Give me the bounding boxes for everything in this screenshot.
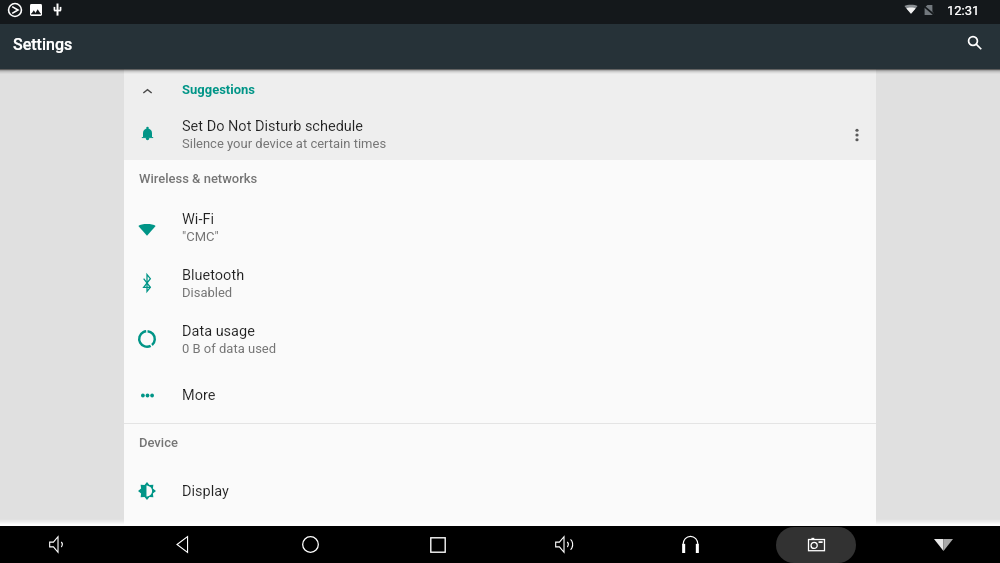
button[interactable]: Back (121, 526, 248, 563)
button[interactable]: Wi-Fi (124, 199, 876, 255)
button[interactable]: More options (838, 109, 876, 160)
button[interactable]: Volume up (500, 526, 627, 563)
staticText: Display (182, 483, 229, 500)
staticText: 0 B of data used (182, 341, 277, 356)
staticText: Data usage (182, 323, 255, 340)
button[interactable]: Data usage (124, 311, 876, 367)
button[interactable]: Headphones (627, 526, 754, 563)
staticText: Set Do Not Disturb schedule (182, 118, 364, 135)
staticText: Wireless & networks (139, 171, 258, 186)
button[interactable]: Search (959, 32, 989, 62)
staticText: Bluetooth (182, 267, 245, 284)
staticText: "CMC" (182, 229, 219, 244)
staticText: Device (139, 435, 178, 450)
staticText: Wi-Fi (182, 211, 214, 228)
staticText: 12:31 (947, 3, 980, 18)
button[interactable]: Home (247, 526, 374, 563)
button[interactable]: Bluetooth (124, 255, 876, 311)
button[interactable]: Suggestions (124, 69, 876, 109)
staticText: More (182, 387, 216, 404)
staticText: Disabled (182, 285, 233, 300)
button[interactable]: Screenshot (776, 527, 856, 563)
button[interactable]: Volume down (0, 526, 121, 563)
staticText: Settings (13, 35, 73, 54)
button[interactable]: Hide navigation bar (880, 526, 1000, 563)
button[interactable]: Recents (374, 526, 501, 563)
button[interactable]: Set Do Not Disturb schedule (124, 109, 876, 160)
staticText: Suggestions (182, 82, 255, 97)
button[interactable]: More (124, 367, 876, 423)
button[interactable]: Display (124, 463, 876, 519)
staticText: Silence your device at certain times (182, 136, 387, 151)
